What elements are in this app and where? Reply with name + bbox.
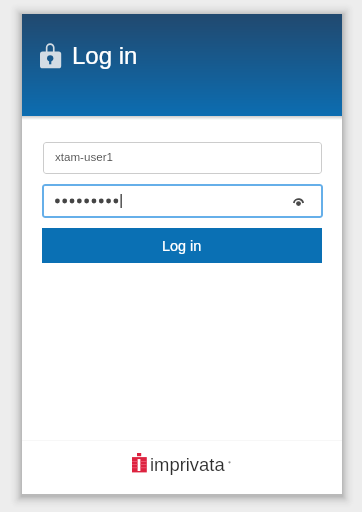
button[interactable]: Show password	[42, 184, 323, 218]
staticText: imprivata	[150, 454, 225, 475]
staticText: Log in	[162, 238, 202, 254]
button[interactable]: Show password	[282, 187, 314, 217]
staticText: Log in	[72, 42, 138, 69]
staticText: xtam-user1	[55, 150, 113, 163]
button[interactable]: xtam-user1	[43, 142, 322, 174]
button[interactable]: Log in	[42, 228, 322, 263]
